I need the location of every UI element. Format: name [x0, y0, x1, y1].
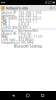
staticText: Service Name	[1, 28, 18, 33]
staticText: Network info	[6, 5, 28, 11]
staticText: Frequency	[1, 40, 18, 45]
staticText: Gateway IP	[1, 13, 18, 18]
staticText: 255.255.255.0	[18, 16, 41, 21]
staticText: Bluetooth Settings	[13, 44, 42, 48]
staticText: Device IP	[1, 10, 16, 15]
staticText: 4:21	[45, 0, 52, 5]
staticText: Device Name	[1, 31, 18, 36]
staticText: 192.168.1.1	[18, 19, 37, 23]
staticText: Net. mask	[1, 16, 17, 21]
staticText: 192.168.1.104	[18, 10, 41, 15]
staticText: 8.8.8.8	[18, 22, 29, 26]
staticText: Lease dur.	[1, 25, 18, 29]
staticText: DNS 2	[1, 22, 10, 26]
staticText: ◀	[12, 94, 14, 97]
staticText: DNS 1	[1, 19, 10, 23]
staticText: Pixel-4a	[18, 31, 31, 36]
staticText: 433 Mbps	[18, 37, 34, 42]
staticText: a4:2b:8c:11:e0	[18, 34, 42, 39]
staticText: 192.168.1.1	[18, 13, 37, 18]
staticText: MyHomeWifi	[18, 28, 38, 33]
staticText: Link speed	[1, 37, 18, 42]
staticText: 5180 MHz	[18, 40, 34, 45]
staticText: MAC	[1, 34, 8, 39]
staticText: 86400 s	[18, 25, 31, 29]
